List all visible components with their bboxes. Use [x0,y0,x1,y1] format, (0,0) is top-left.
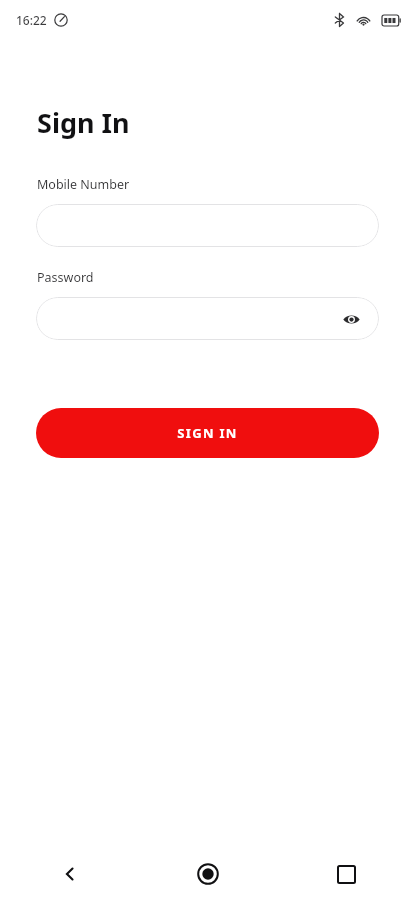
button[interactable]: Back [0,848,139,900]
staticText: 16:22 [16,12,47,28]
button[interactable]: SIGN IN [36,408,379,458]
button[interactable]: Home [139,848,277,900]
staticText: Sign In [37,104,130,141]
staticText: Password [37,269,94,286]
staticText: SIGN IN [177,424,238,442]
button[interactable]: Show password [36,297,379,340]
button[interactable]: Show password [337,305,365,333]
button[interactable] [36,204,379,247]
button[interactable]: Recent apps [277,848,415,900]
staticText: Mobile Number [37,176,130,193]
